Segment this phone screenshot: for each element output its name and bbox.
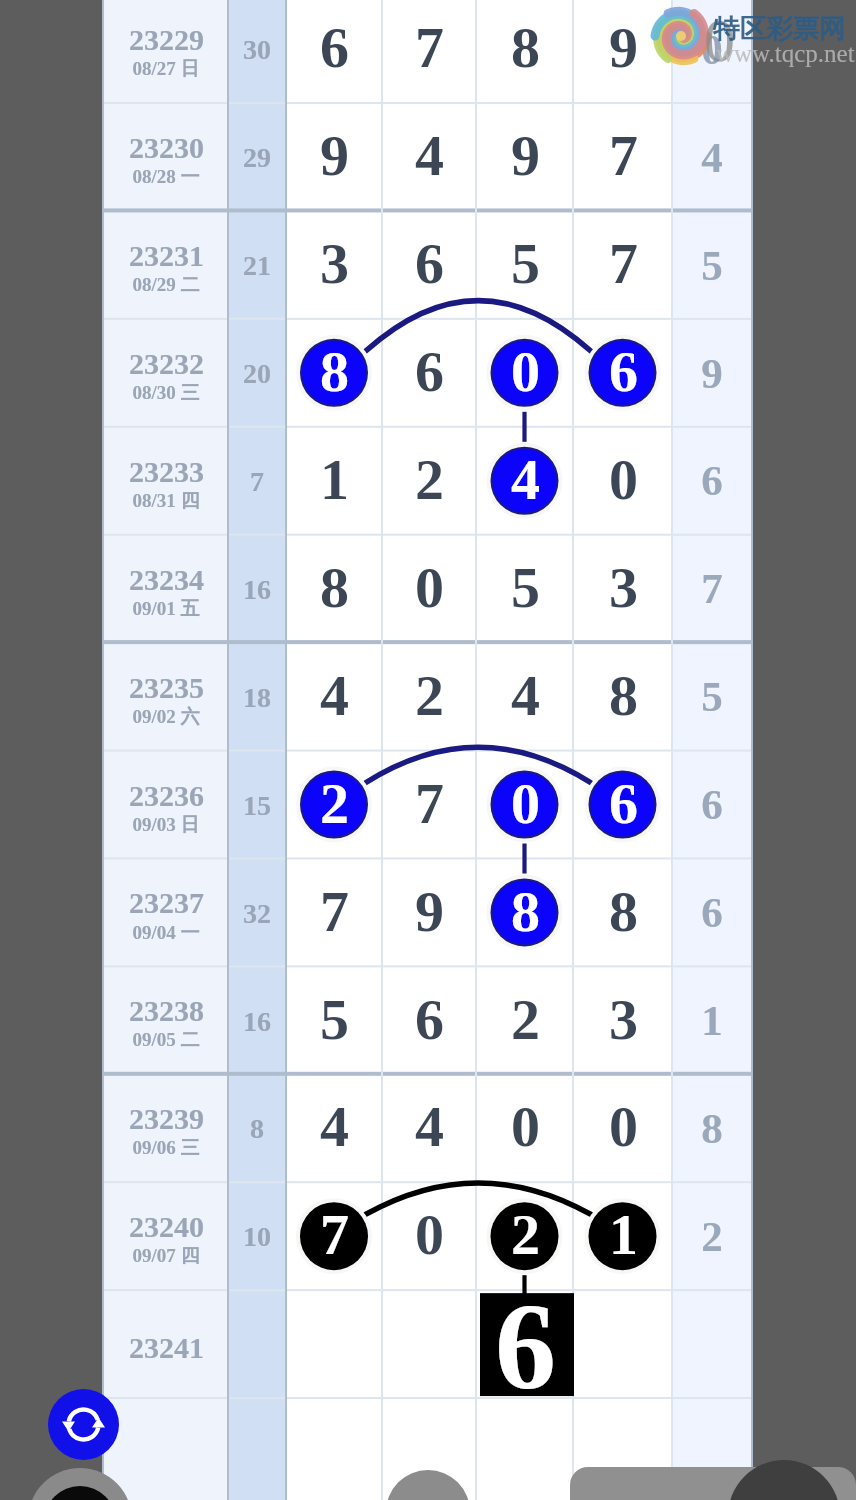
staticText: 特区彩票网 xyxy=(713,12,846,45)
staticText: 6 xyxy=(415,987,444,1051)
staticText: 1 xyxy=(609,1202,638,1266)
staticText: 0 xyxy=(704,6,735,75)
staticText: 4 xyxy=(320,1094,349,1158)
staticText: 4 xyxy=(511,447,540,511)
staticText: 6 xyxy=(415,339,444,403)
staticText: 6 xyxy=(701,889,723,937)
staticText: 16 xyxy=(243,1006,271,1037)
staticText: 30 xyxy=(243,34,271,65)
staticText: 9 xyxy=(701,350,723,398)
staticText: 09/03 日 xyxy=(132,813,200,837)
staticText: 8 xyxy=(701,1105,723,1153)
staticText: 2 xyxy=(701,1213,723,1261)
staticText: 08/28 一 xyxy=(132,165,200,189)
staticText: 09/05 二 xyxy=(132,1028,200,1052)
staticText: 4 xyxy=(511,663,540,727)
staticText: 0 xyxy=(415,555,444,619)
staticText: 3 xyxy=(320,231,349,295)
staticText: 08/29 二 xyxy=(132,273,200,297)
staticText: 08/30 三 xyxy=(132,381,200,405)
staticText: 32 xyxy=(243,898,271,929)
staticText: 2 xyxy=(415,663,444,727)
staticText: 5 xyxy=(320,987,349,1051)
staticText: 7 xyxy=(250,466,264,497)
staticText: 6 xyxy=(609,771,638,835)
staticText: 3 xyxy=(609,987,638,1051)
staticText: 09/02 六 xyxy=(132,705,200,729)
staticText: 1 xyxy=(701,997,723,1045)
staticText: 29 xyxy=(243,142,271,173)
staticText: 5 xyxy=(701,242,723,290)
staticText: 23230 xyxy=(129,131,204,164)
staticText: 5 xyxy=(511,555,540,619)
staticText: 18 xyxy=(243,682,271,713)
staticText: 09/06 三 xyxy=(132,1136,200,1160)
staticText: 6 xyxy=(320,15,349,79)
staticText: 7 xyxy=(701,565,723,613)
staticText: 09/04 一 xyxy=(132,921,200,945)
staticText: 23229 xyxy=(129,23,204,56)
staticText: 1 xyxy=(320,447,349,511)
staticText: 6 xyxy=(609,339,638,403)
staticText: 7 xyxy=(415,771,444,835)
staticText: 9 xyxy=(415,879,444,943)
staticText: 7 xyxy=(415,15,444,79)
staticText: 8 xyxy=(511,15,540,79)
staticText: 23232 xyxy=(129,347,204,380)
staticText: 6 xyxy=(415,231,444,295)
staticText: 23231 xyxy=(129,239,204,272)
staticText: 7 xyxy=(320,1202,349,1266)
staticText: 2 xyxy=(511,1202,540,1266)
staticText: 10 xyxy=(243,1221,271,1252)
staticText: 6 xyxy=(701,781,723,829)
staticText: 3 xyxy=(609,555,638,619)
staticText: 20 xyxy=(243,358,271,389)
staticText: 8 xyxy=(320,555,349,619)
staticText: 4 xyxy=(320,663,349,727)
staticText: 8 xyxy=(320,339,349,403)
staticText: 2 xyxy=(511,987,540,1051)
staticText: 21 xyxy=(243,250,271,281)
staticText: 7 xyxy=(320,879,349,943)
staticText: 8 xyxy=(250,1113,264,1144)
staticText: 23236 xyxy=(129,779,204,812)
staticText: 16 xyxy=(243,574,271,605)
staticText: 5 xyxy=(511,231,540,295)
staticText: 2 xyxy=(320,771,349,835)
staticText: 9 xyxy=(511,123,540,187)
staticText: 7 xyxy=(609,123,638,187)
staticText: 4 xyxy=(701,134,723,182)
staticText: 8 xyxy=(511,879,540,943)
staticText: 9 xyxy=(320,123,349,187)
staticText: 23237 xyxy=(129,886,204,919)
staticText: 0 xyxy=(701,26,723,74)
staticText: 09/01 五 xyxy=(132,597,200,621)
staticText: 8 xyxy=(609,663,638,727)
staticText: 0 xyxy=(511,1094,540,1158)
staticText: www.tqcp.net xyxy=(716,40,855,68)
staticText: 23233 xyxy=(129,455,204,488)
staticText: 0 xyxy=(511,339,540,403)
staticText: 09/07 四 xyxy=(132,1244,200,1268)
staticText: 15 xyxy=(243,790,271,821)
staticText: 23235 xyxy=(129,671,204,704)
staticText: 7 xyxy=(609,231,638,295)
staticText: 4 xyxy=(415,123,444,187)
staticText: 0 xyxy=(415,1202,444,1266)
staticText: 0 xyxy=(511,771,540,835)
staticText: 23239 xyxy=(129,1102,204,1135)
staticText: 6 xyxy=(701,457,723,505)
staticText: 2 xyxy=(415,447,444,511)
staticText: 5 xyxy=(701,673,723,721)
staticText: 23234 xyxy=(129,563,204,596)
staticText: 23240 xyxy=(129,1210,204,1243)
staticText: 08/31 四 xyxy=(132,489,200,513)
staticText: 4 xyxy=(415,1094,444,1158)
staticText: 6 xyxy=(495,1279,556,1414)
staticText: 23238 xyxy=(129,994,204,1027)
staticText: 0 xyxy=(609,447,638,511)
staticText: 23241 xyxy=(129,1331,204,1364)
button[interactable]: Refresh xyxy=(48,1389,119,1460)
staticText: 9 xyxy=(609,15,638,79)
staticText: 8 xyxy=(609,879,638,943)
